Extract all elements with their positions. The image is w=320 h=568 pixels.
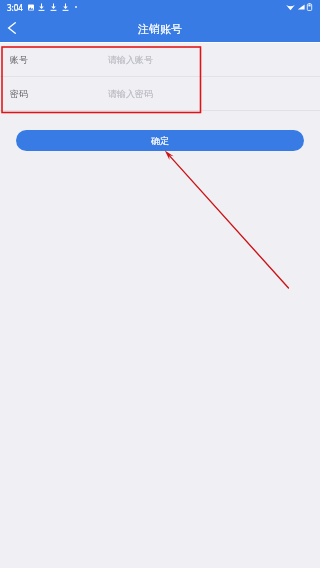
staticText: 请输入账号 [108,54,153,65]
button[interactable]: Back [0,19,23,42]
staticText: 请输入密码 [108,88,153,99]
button[interactable]: 账号 [0,43,320,76]
button[interactable]: 确定 [16,130,304,151]
staticText: 密码 [10,88,28,99]
staticText: 确定 [151,135,169,146]
staticText: 3:04 [7,2,23,13]
staticText: 账号 [10,54,28,65]
button[interactable]: 密码 [0,77,320,110]
staticText: 注销账号 [138,22,182,36]
